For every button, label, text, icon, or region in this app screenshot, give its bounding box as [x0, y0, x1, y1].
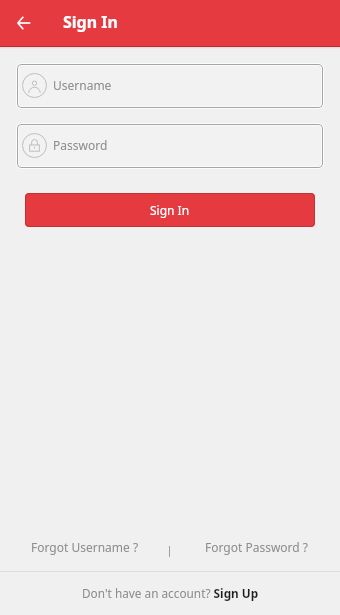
staticText: Sign In: [63, 11, 118, 33]
button[interactable]: Sign In: [25, 193, 315, 227]
button[interactable]: Forgot Username ?: [0, 526, 169, 571]
button[interactable]: Don't have an account? Sign Up: [0, 572, 340, 615]
staticText: Username: [53, 77, 112, 93]
button[interactable]: Forgot Password ?: [170, 526, 340, 571]
staticText: Password: [53, 137, 108, 153]
button[interactable]: Password: [18, 125, 322, 167]
button[interactable]: Back: [11, 10, 37, 36]
staticText: Forgot Password ?: [205, 539, 309, 555]
staticText: Don't have an account? Sign Up: [82, 585, 259, 601]
staticText: Sign In: [150, 202, 190, 218]
staticText: Forgot Username ?: [31, 539, 139, 555]
button[interactable]: Username: [18, 65, 322, 107]
